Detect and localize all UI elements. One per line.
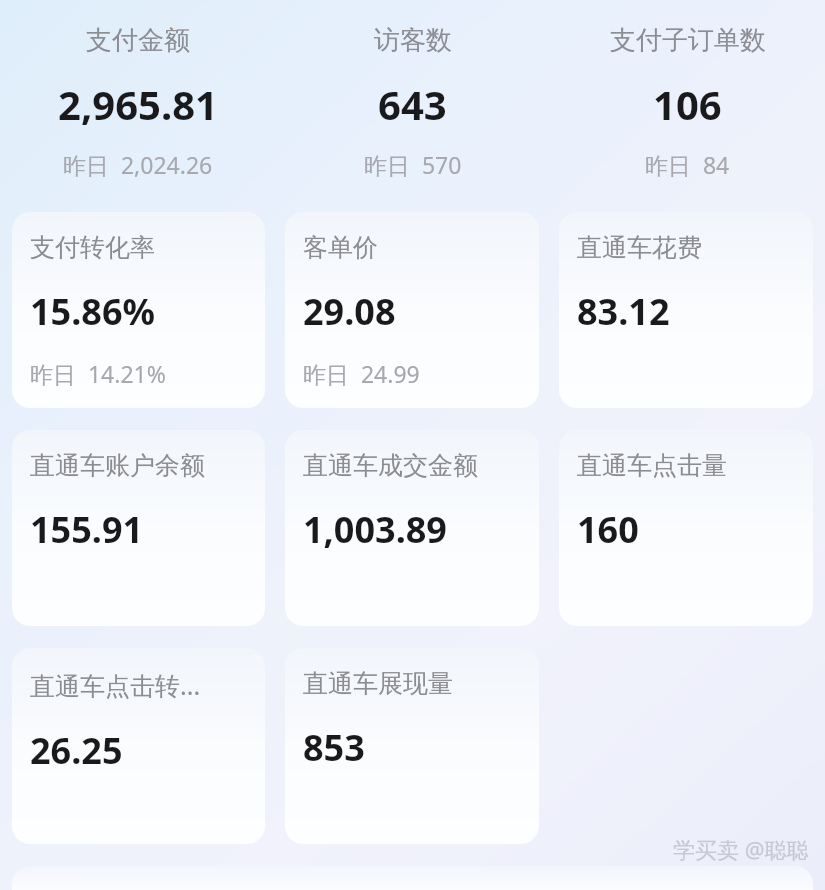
button[interactable]: 直通车展现量 [285,648,539,844]
staticText: 访客数 [374,24,452,57]
button[interactable]: 直通车点击量 [559,430,813,626]
staticText: 155.91 [30,505,144,554]
staticText: 1,003.89 [303,505,447,554]
button[interactable]: 访客数 [275,24,550,180]
staticText: 支付子订单数 [610,24,766,57]
staticText: 15.86% [30,287,155,336]
staticText: 学买卖 @聪聪 [673,834,809,864]
staticText: 昨日 570 [364,149,462,180]
button[interactable]: 直通车点击转... [12,648,265,844]
staticText: 直通车展现量 [303,668,453,699]
staticText: 客单价 [303,232,378,263]
staticText: 昨日 84 [645,149,730,180]
staticText: 直通车点击转... [30,668,201,702]
staticText: 直通车点击量 [577,450,727,481]
staticText: 853 [303,723,365,772]
staticText: 昨日 2,024.26 [63,149,213,180]
staticText: 直通车成交金额 [303,450,478,481]
staticText: 直通车账户余额 [30,450,205,481]
staticText: 2,965.81 [58,77,218,131]
staticText: 26.25 [30,726,123,775]
button[interactable]: 直通车花费 [559,212,813,408]
button[interactable]: 客单价 [285,212,539,408]
button[interactable]: 支付转化率 [12,212,265,408]
staticText: 直通车花费 [577,232,702,263]
staticText: 160 [577,505,639,554]
button[interactable]: 直通车成交金额 [285,430,539,626]
button[interactable]: 支付子订单数 [550,24,825,180]
button[interactable]: 直通车账户余额 [12,430,265,626]
button[interactable]: 支付金额 [0,24,275,180]
staticText: 支付转化率 [30,232,155,263]
staticText: 昨日 24.99 [303,358,420,389]
staticText: 昨日 14.21% [30,358,166,389]
staticText: 643 [378,77,447,131]
staticText: 106 [653,77,722,131]
staticText: 29.08 [303,287,396,336]
staticText: 83.12 [577,287,670,336]
staticText: 支付金额 [86,24,190,57]
